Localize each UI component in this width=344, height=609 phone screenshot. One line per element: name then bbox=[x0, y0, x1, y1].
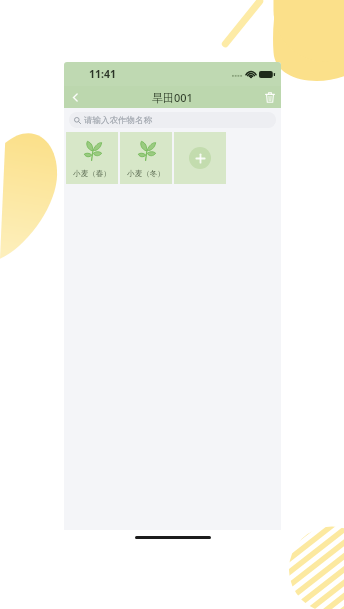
button[interactable]: Add crop bbox=[174, 132, 226, 184]
staticText: 小麦（冬） bbox=[120, 169, 172, 178]
button[interactable]: 请输入农作物名称 bbox=[69, 112, 276, 128]
button[interactable]: 小麦（冬） bbox=[120, 132, 172, 184]
button[interactable]: Delete bbox=[259, 86, 281, 108]
staticText: 请输入农作物名称 bbox=[84, 115, 152, 126]
staticText: 旱田001 bbox=[152, 90, 193, 105]
staticText: 11:41 bbox=[89, 67, 116, 81]
button[interactable]: Back bbox=[64, 86, 86, 108]
staticText: 小麦（春） bbox=[66, 169, 118, 178]
button[interactable]: 小麦（春） bbox=[66, 132, 118, 184]
